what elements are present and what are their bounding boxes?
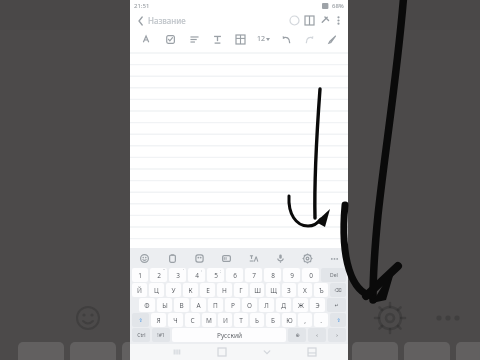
button[interactable]: 0 [302,268,319,282]
button[interactable]: View mode [302,13,317,28]
button[interactable]: 1 [132,268,148,282]
staticText: › [336,332,338,339]
button[interactable]: Е [200,283,215,297]
staticText: Ж [298,301,304,310]
button[interactable]: Л [259,298,274,312]
button[interactable]: Ъ [314,283,328,297]
button[interactable]: Checklist [158,29,182,49]
button[interactable]: Ь [250,313,264,327]
button[interactable]: И [218,313,232,327]
button[interactable]: 5 [207,268,224,282]
button[interactable]: Voice input [267,248,294,268]
staticText: К [188,286,193,295]
staticText: 2 [157,271,161,280]
button[interactable]: Toggle [287,13,302,28]
button[interactable]: Keyboard settings [294,248,321,268]
button[interactable]: Attach [317,13,332,28]
staticText: 9 [290,271,294,280]
button[interactable]: !#1 [152,328,170,342]
button[interactable]: К [183,283,198,297]
button[interactable]: 9 [283,268,300,282]
button[interactable]: Ы [157,298,172,312]
button[interactable]: Ч [168,313,183,327]
button[interactable]: Table [229,29,252,49]
button[interactable]: Stickers [186,248,213,268]
button[interactable]: Redo [298,29,321,49]
button[interactable]: Translate [240,248,267,268]
button[interactable]: Font style [134,29,158,49]
button[interactable]: П [208,298,223,312]
button[interactable]: Русский [172,328,286,342]
button[interactable]: Move left [308,328,326,342]
staticText: 3 [176,271,180,280]
button[interactable]: Move right [328,328,346,342]
button[interactable]: Ш [250,283,264,297]
staticText: Н [222,286,227,295]
button[interactable]: Back [133,13,148,28]
staticText: Й [137,286,142,295]
button[interactable]: М [202,313,216,327]
button[interactable]: Н [217,283,232,297]
staticText: 5 [214,271,218,280]
staticText: П [213,301,218,310]
button[interactable]: У [166,283,181,297]
button[interactable]: Д [276,298,291,312]
button[interactable]: Home [289,344,334,360]
button[interactable]: Ю [282,313,296,327]
button[interactable]: GIF [213,248,240,268]
button[interactable]: Undo [275,29,298,49]
button[interactable]: 2 [150,268,167,282]
button[interactable]: Б [266,313,280,327]
button[interactable]: Shift right [330,313,346,327]
staticText: Ъ [319,286,324,295]
button[interactable]: Del [321,268,346,282]
staticText: 7 [252,271,256,280]
button[interactable]: . [314,313,328,327]
button[interactable]: В [174,298,189,312]
button[interactable]: С [185,313,200,327]
button[interactable]: Т [234,313,248,327]
button[interactable]: 3 [169,268,186,282]
button[interactable]: Р [225,298,240,312]
button[interactable]: Я [151,313,166,327]
button[interactable]: Emoji [288,328,306,342]
button[interactable]: Х [298,283,312,297]
button[interactable]: Ж [293,298,308,312]
staticText: Э [315,301,320,310]
button[interactable]: Clipboard [158,248,186,268]
button[interactable]: Emoji [130,248,158,268]
button[interactable]: Г [234,283,248,297]
button[interactable]: Shift [132,313,149,327]
button[interactable]: Recents [199,344,244,360]
staticText: ⇧ [336,317,341,323]
button[interactable]: Ctrl [132,328,150,342]
button[interactable]: 6 [226,268,243,282]
button[interactable]: З [282,283,296,297]
button[interactable]: А [191,298,206,312]
button[interactable]: Draw [321,29,344,49]
button[interactable]: О [242,298,257,312]
button[interactable]: Ц [149,283,164,297]
button[interactable]: 7 [245,268,262,282]
staticText: О [247,301,252,310]
button[interactable]: Hide keyboard [154,344,199,360]
button[interactable]: Backspace [330,283,346,297]
button[interactable]: Э [310,298,325,312]
button[interactable]: Ф [139,298,155,312]
button[interactable]: , [298,313,312,327]
button[interactable]: More options [332,14,345,27]
button[interactable]: 4 [188,268,205,282]
button[interactable]: Font size [252,29,275,49]
button[interactable]: 8 [264,268,281,282]
staticText: : [201,268,203,273]
staticText: Ь [255,316,259,325]
button[interactable]: Щ [266,283,280,297]
button[interactable]: Back [244,344,289,360]
button[interactable]: Й [132,283,147,297]
button[interactable]: Bullet list [182,29,206,49]
button[interactable]: Text format [206,29,229,49]
button[interactable]: More [321,248,348,268]
button[interactable]: Enter [327,298,346,312]
staticText: ' [183,268,184,273]
staticText: Русский [217,331,242,340]
